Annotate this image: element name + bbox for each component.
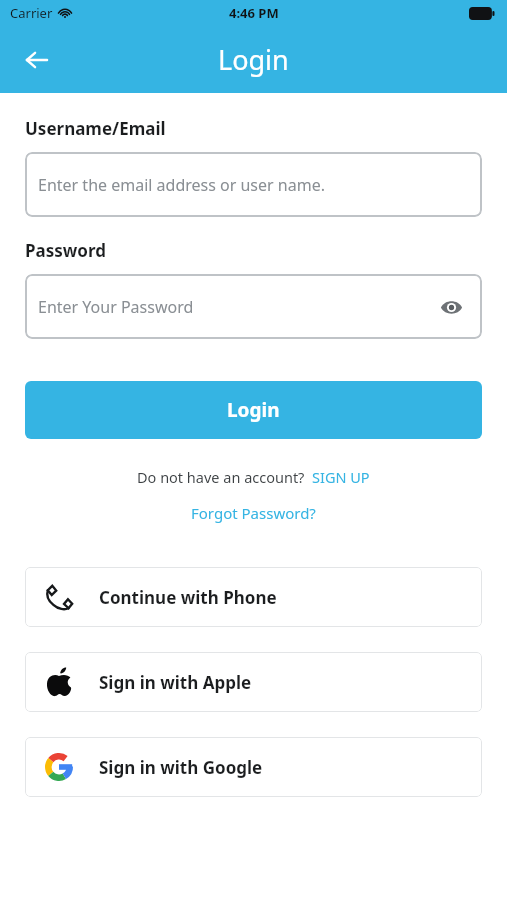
button[interactable]: Sign in with Google <box>25 737 482 797</box>
staticText: Sign in with Apple <box>99 671 252 694</box>
button[interactable]: Forgot Password? <box>191 503 316 523</box>
button[interactable]: Sign in with Apple <box>25 652 482 712</box>
staticText: SIGN UP <box>312 467 370 487</box>
staticText: Password <box>25 239 106 262</box>
staticText: Continue with Phone <box>99 586 277 609</box>
staticText: Login <box>218 41 289 78</box>
staticText: Enter the email address or user name. <box>38 174 325 196</box>
button[interactable]: Login <box>25 381 482 439</box>
staticText: Carrier <box>10 4 53 22</box>
button[interactable]: Back <box>14 37 60 83</box>
staticText: 4:46 PM <box>229 4 279 22</box>
staticText: Login <box>227 397 280 423</box>
button[interactable]: Enter Your Password <box>25 274 482 339</box>
staticText: Enter Your Password <box>38 296 194 318</box>
button[interactable]: Show password <box>434 290 468 324</box>
button[interactable]: Enter the email address or user name. <box>25 152 482 217</box>
staticText: Forgot Password? <box>191 503 316 523</box>
staticText: Sign in with Google <box>99 756 263 779</box>
button[interactable]: SIGN UP <box>312 467 370 487</box>
staticText: Do not have an account? <box>137 467 305 487</box>
button[interactable]: Continue with Phone <box>25 567 482 627</box>
staticText: Username/Email <box>25 117 166 140</box>
